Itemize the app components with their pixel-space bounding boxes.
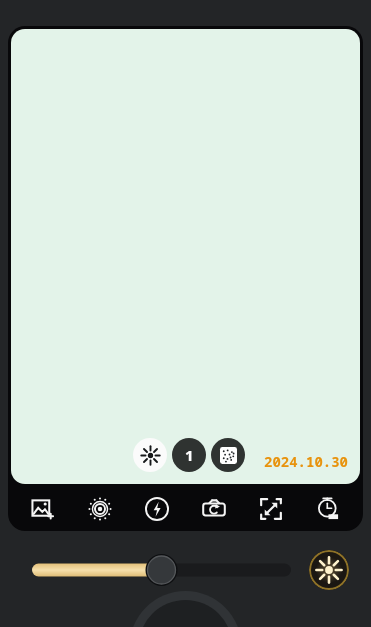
button[interactable]: Add photo (21, 487, 65, 531)
button[interactable]: Film grain (211, 438, 245, 472)
button[interactable]: Brightness slider (32, 551, 291, 589)
button[interactable]: Aspect ratio (249, 487, 293, 531)
button[interactable]: Timer off (306, 487, 350, 531)
button[interactable]: Switch camera (192, 487, 236, 531)
staticText: 1 (185, 445, 194, 465)
button[interactable]: 1 (172, 438, 206, 472)
button[interactable]: Toggle light (309, 550, 349, 590)
button[interactable]: Brightness (133, 438, 167, 472)
button[interactable]: Flash (135, 487, 179, 531)
staticText: 2024.10.30 (264, 452, 348, 471)
button[interactable]: Exposure (78, 487, 122, 531)
